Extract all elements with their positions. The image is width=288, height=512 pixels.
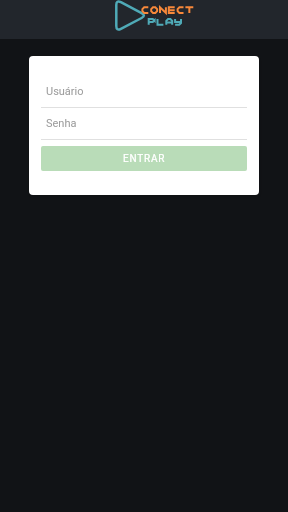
staticText: Usuário (46, 85, 84, 98)
button[interactable]: Senha (41, 117, 247, 140)
other: Conect Play (0, 0, 288, 39)
button[interactable]: ENTRAR (41, 146, 247, 171)
button[interactable]: Usuário (41, 85, 247, 108)
staticText: Senha (46, 117, 77, 130)
staticText: ENTRAR (123, 153, 166, 165)
